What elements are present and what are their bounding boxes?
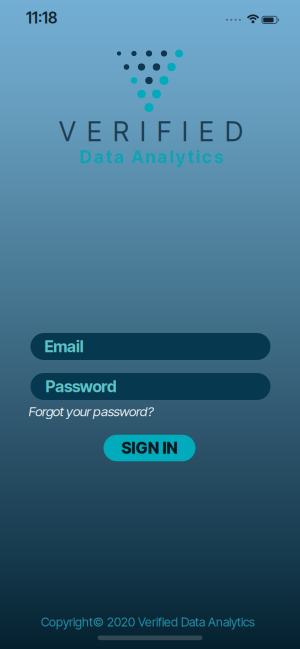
button[interactable]: Email (30, 333, 270, 360)
staticText: VERIFIED (59, 115, 243, 148)
staticText: 11:18 (26, 9, 57, 27)
button[interactable]: Forgot your password? (28, 403, 153, 419)
staticText: Copyright© 2020 Verified Data Analytics (41, 614, 255, 629)
staticText: Data Analytics (79, 146, 223, 167)
staticText: Email (44, 337, 84, 356)
staticText: SIGN IN (121, 438, 178, 458)
staticText: Forgot your password? (28, 403, 153, 419)
button[interactable]: Password (30, 373, 270, 400)
staticText: Password (45, 377, 117, 396)
button[interactable]: SIGN IN (103, 435, 195, 461)
